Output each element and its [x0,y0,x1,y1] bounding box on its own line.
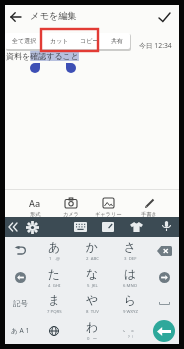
button[interactable] [155,8,173,26]
button[interactable]: 共有 [104,33,130,49]
button[interactable] [8,9,24,25]
button[interactable]: 、。 [111,317,149,344]
staticText: は [124,267,137,282]
button[interactable] [5,264,35,291]
staticText: な [86,267,99,282]
button[interactable]: あ [35,237,73,264]
staticText: 形式 [30,211,41,218]
staticText: 7 PQRS [47,308,62,314]
staticText: た [48,267,61,282]
staticText: 2 ABC [86,255,99,261]
button[interactable] [23,217,41,237]
button[interactable]: 手書き [135,197,163,218]
staticText: 全て選択 [12,37,37,45]
staticText: や [86,293,99,308]
staticText: 0 ー [87,335,98,341]
staticText: 資料を確認すること [6,51,79,61]
staticText: 今日 12:34 [139,41,172,50]
button[interactable] [153,320,175,342]
staticText: 9 WXYZ [123,308,138,314]
button[interactable] [66,63,76,73]
button[interactable] [149,237,179,264]
staticText: さ [124,240,137,255]
button[interactable]: や [73,290,111,317]
staticText: Aa [29,197,41,209]
staticText: メモを編集 [30,10,77,22]
staticText: ？！ [127,334,135,339]
button[interactable]: は [111,264,149,291]
button[interactable]: カット [44,33,74,49]
staticText: ま [48,293,61,308]
button[interactable] [30,63,40,73]
button[interactable] [5,217,21,237]
button[interactable]: ギャラリー [94,197,122,218]
staticText: ギャラリー [95,211,122,218]
button[interactable] [149,264,179,291]
staticText: カット [50,37,69,45]
button[interactable]: カメラ [57,197,85,218]
staticText: コピー [80,37,99,45]
button[interactable]: さ [111,237,149,264]
button[interactable] [127,217,145,237]
staticText: 8 TUV [86,308,99,314]
staticText: 手書き [141,211,157,218]
button[interactable] [71,217,89,237]
button[interactable]: Aa [21,197,49,218]
staticText: か [86,240,99,255]
button[interactable] [35,317,73,344]
staticText: 記号 [13,299,28,308]
button[interactable] [157,217,175,237]
staticText: あ [48,240,61,255]
button[interactable]: 記号 [5,290,35,317]
staticText: 1 .@ [49,255,60,261]
staticText: 、。 [122,323,139,334]
button[interactable]: コピー [74,33,104,49]
staticText: カメラ [63,211,79,218]
button[interactable]: 全て選択 [5,33,44,49]
staticText: 4 GHI [48,282,61,288]
button[interactable]: ま [35,290,73,317]
button[interactable]: あ A 1 [5,317,35,344]
staticText: 5 JKL [87,282,98,288]
staticText: 3 DEF [124,255,137,261]
button[interactable] [149,317,179,344]
button[interactable] [149,290,179,317]
button[interactable] [99,217,117,237]
staticText: わ [86,320,99,335]
staticText: ら [124,293,137,308]
staticText: 共有 [111,37,123,45]
button[interactable]: か [73,237,111,264]
button[interactable]: わ [73,317,111,344]
staticText: 6 MNO [123,282,138,288]
button[interactable]: ら [111,290,149,317]
staticText: あ A 1 [11,326,30,335]
button[interactable]: な [73,264,111,291]
button[interactable] [5,237,35,264]
button[interactable]: た [35,264,73,291]
